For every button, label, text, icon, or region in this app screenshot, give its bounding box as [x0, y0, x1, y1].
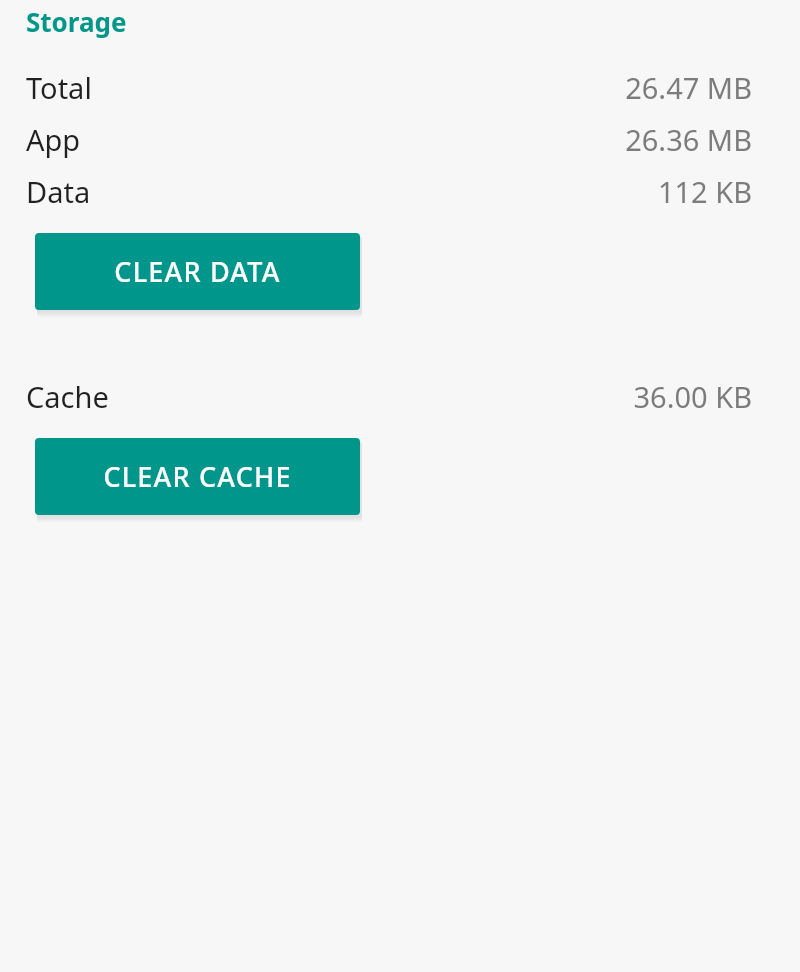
- staticText: 26.36 MB: [625, 120, 752, 159]
- staticText: 112 KB: [657, 172, 752, 211]
- button[interactable]: CLEAR CACHE: [35, 438, 360, 515]
- staticText: CLEAR CACHE: [103, 458, 292, 495]
- staticText: Storage: [26, 4, 127, 39]
- button[interactable]: CLEAR DATA: [35, 233, 360, 310]
- staticText: Cache: [26, 377, 109, 416]
- staticText: Total: [26, 68, 92, 107]
- staticText: 36.00 KB: [633, 377, 752, 416]
- staticText: Data: [26, 172, 91, 211]
- staticText: CLEAR DATA: [114, 253, 281, 290]
- staticText: 26.47 MB: [625, 68, 752, 107]
- staticText: App: [26, 120, 81, 159]
